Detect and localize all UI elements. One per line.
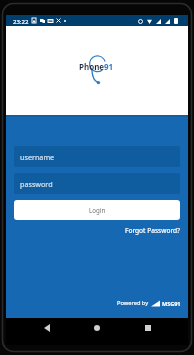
button[interactable]: Login (14, 200, 180, 220)
staticText: 23:22 (13, 18, 29, 26)
button[interactable]: Back (37, 318, 57, 338)
staticText: Forgot Password? (125, 226, 180, 235)
staticText: Phone (79, 61, 105, 72)
button[interactable]: Recent apps (138, 318, 158, 338)
staticText: username (20, 152, 55, 162)
button[interactable]: password (14, 173, 180, 194)
button[interactable]: Home (87, 318, 107, 338)
staticText: MSG91 (162, 300, 181, 307)
button[interactable]: username (14, 146, 180, 167)
staticText: Login (89, 206, 106, 214)
staticText: password (20, 179, 53, 189)
button[interactable]: Forgot Password? (123, 224, 182, 237)
staticText: Powered by (117, 299, 149, 307)
staticText: 91 (104, 61, 114, 72)
